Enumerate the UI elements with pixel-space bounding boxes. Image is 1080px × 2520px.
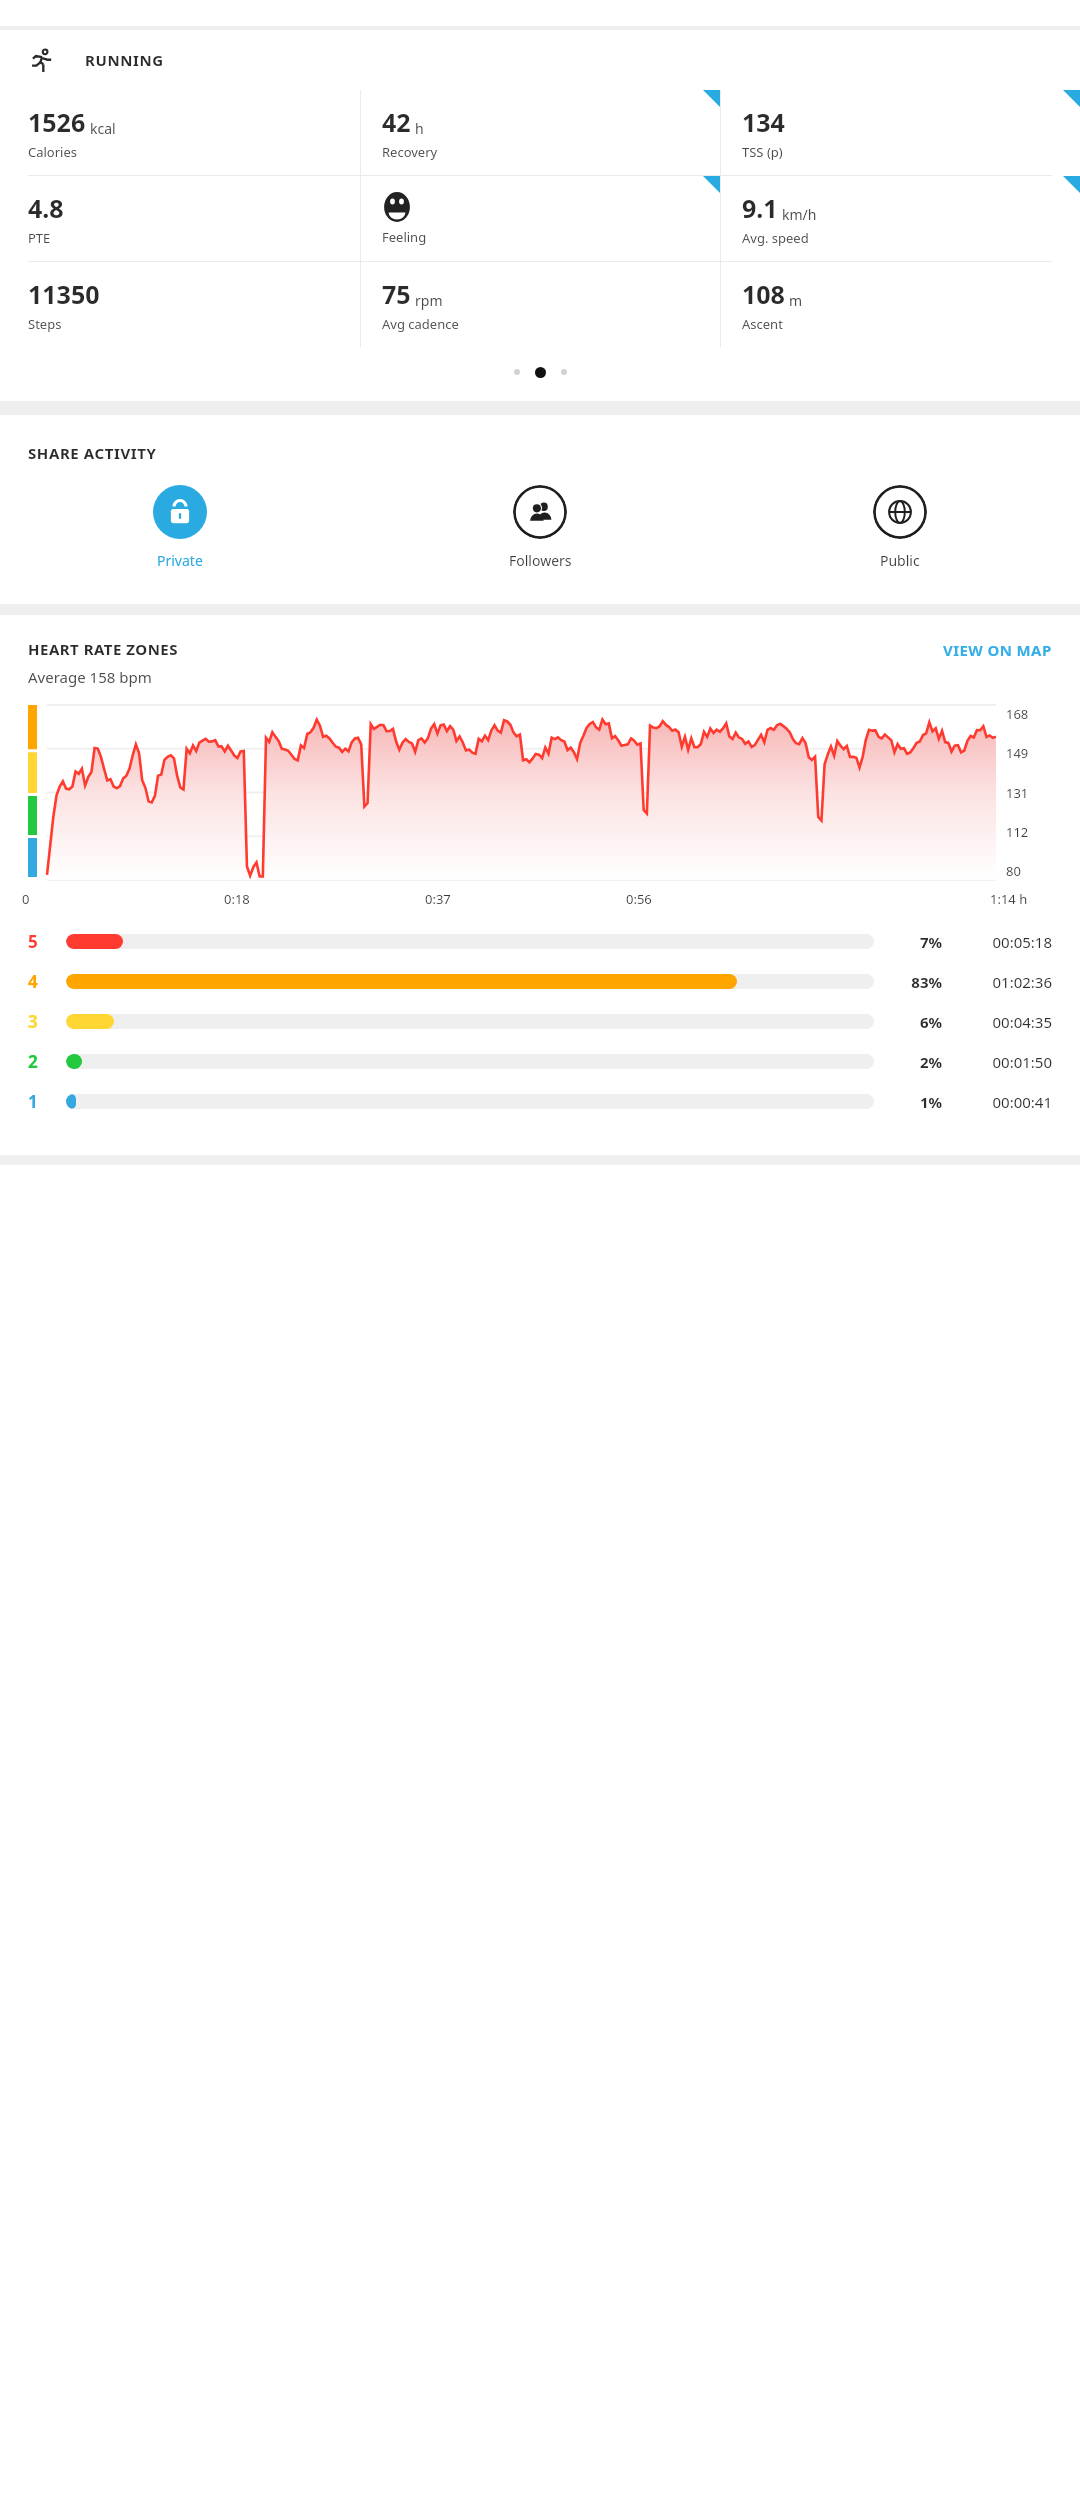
staticText: SHARE ACTIVITY <box>28 443 157 463</box>
staticText: Calories <box>28 143 78 161</box>
button[interactable]: Public <box>720 485 1080 570</box>
staticText: PTE <box>28 229 51 247</box>
button[interactable]: 5 <box>28 930 1052 953</box>
button[interactable]: 3 <box>28 1010 1052 1033</box>
staticText: 00:00:41 <box>956 1092 1052 1112</box>
staticText: Feeling <box>382 228 427 246</box>
button[interactable]: Private <box>0 485 360 570</box>
staticText: 11350 <box>28 277 100 311</box>
staticText: 0 <box>22 890 30 908</box>
staticText: 42 <box>382 105 411 139</box>
staticText: km/h <box>782 205 817 224</box>
button[interactable]: 11350 <box>0 262 360 347</box>
other: Public <box>887 499 913 525</box>
staticText: 2% <box>888 1052 942 1072</box>
button[interactable]: 1526 <box>0 90 360 175</box>
button[interactable]: 4.8 <box>0 176 360 261</box>
staticText: m <box>789 291 803 310</box>
staticText: 00:05:18 <box>956 932 1052 952</box>
staticText: 01:02:36 <box>956 972 1052 992</box>
staticText: 1% <box>888 1092 942 1112</box>
staticText: 5 <box>28 930 38 953</box>
staticText: 0:18 <box>224 890 250 908</box>
button[interactable]: VIEW ON MAP <box>935 639 1052 660</box>
staticText: Recovery <box>382 143 438 161</box>
staticText: 134 <box>742 105 785 139</box>
staticText: 9.1 <box>742 191 778 225</box>
staticText: Followers <box>509 551 572 570</box>
staticText: 80 <box>1006 862 1021 880</box>
staticText: Ascent <box>742 315 783 333</box>
button[interactable]: Followers <box>360 485 720 570</box>
button[interactable]: 75 <box>360 262 720 347</box>
staticText: HEART RATE ZONES <box>28 639 179 659</box>
staticText: RUNNING <box>85 50 164 70</box>
staticText: 149 <box>1006 744 1029 762</box>
other: Running <box>28 47 55 74</box>
staticText: Public <box>880 551 920 570</box>
staticText: 1526 <box>28 105 86 139</box>
staticText: 7% <box>888 932 942 952</box>
staticText: 168 <box>1006 705 1029 723</box>
staticText: h <box>415 119 424 138</box>
staticText: 83% <box>888 972 942 992</box>
staticText: 00:01:50 <box>956 1052 1052 1072</box>
other: Private <box>167 499 193 525</box>
staticText: 4 <box>28 970 38 993</box>
staticText: 1:14 h <box>990 890 1028 908</box>
staticText: 0:37 <box>425 890 451 908</box>
button[interactable]: 42 <box>360 90 720 175</box>
button[interactable]: Feeling <box>360 176 720 261</box>
staticText: 75 <box>382 277 411 311</box>
staticText: 3 <box>28 1010 38 1033</box>
staticText: Avg. speed <box>742 229 809 247</box>
staticText: 1 <box>28 1090 38 1113</box>
staticText: rpm <box>415 291 443 310</box>
staticText: Avg cadence <box>382 315 459 333</box>
staticText: 112 <box>1006 823 1029 841</box>
button[interactable]: 134 <box>720 90 1080 175</box>
staticText: 4.8 <box>28 191 64 225</box>
other: Followers <box>527 499 553 525</box>
staticText: 108 <box>742 277 785 311</box>
staticText: Average 158 bpm <box>28 667 152 687</box>
staticText: Steps <box>28 315 62 333</box>
button[interactable]: 9.1 <box>720 176 1080 261</box>
staticText: 6% <box>888 1012 942 1032</box>
staticText: 2 <box>28 1050 38 1073</box>
staticText: 0:56 <box>626 890 652 908</box>
button[interactable]: 4 <box>28 970 1052 993</box>
staticText: 00:04:35 <box>956 1012 1052 1032</box>
button[interactable]: 1 <box>28 1090 1052 1113</box>
button[interactable]: 2 <box>28 1050 1052 1073</box>
button[interactable]: 108 <box>720 262 1080 347</box>
staticText: 131 <box>1006 784 1029 802</box>
staticText: kcal <box>90 119 116 138</box>
staticText: VIEW ON MAP <box>943 640 1052 660</box>
staticText: Private <box>157 551 203 570</box>
staticText: TSS (p) <box>742 143 783 161</box>
